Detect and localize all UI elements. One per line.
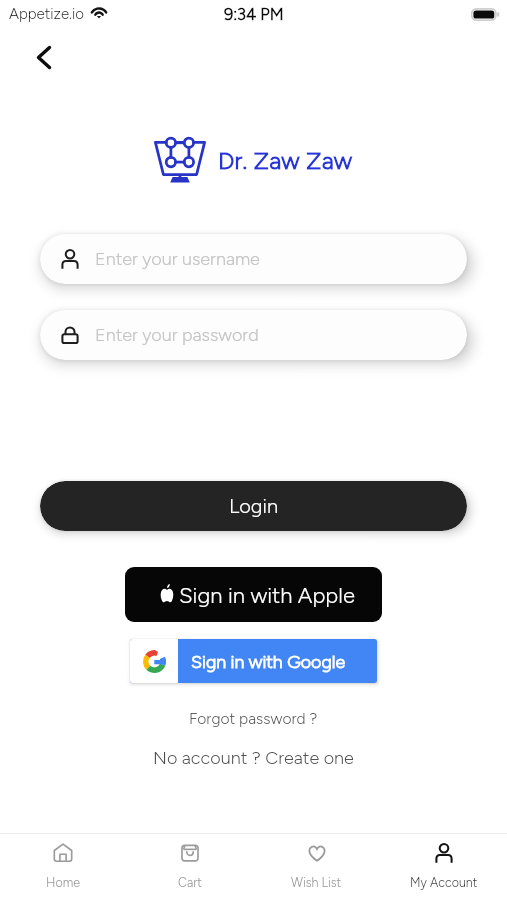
- button[interactable]: Login: [40, 481, 467, 531]
- staticText: 9:34 PM: [224, 4, 284, 24]
- button[interactable]: Enter your password: [40, 310, 467, 360]
- staticText: No account ? Create one: [153, 747, 354, 769]
- staticText: Forgot password ?: [189, 709, 318, 728]
- button[interactable]: No account ? Create one: [145, 744, 362, 772]
- staticText: Sign in with Google: [191, 651, 346, 672]
- staticText: Enter your username: [95, 248, 260, 270]
- button[interactable]: Sign in with Google: [130, 639, 377, 683]
- button[interactable]: Forgot password ?: [181, 706, 326, 731]
- staticText: Enter your password: [95, 324, 259, 346]
- button[interactable]: Wish List: [253, 839, 380, 896]
- staticText: Wish List: [291, 875, 342, 890]
- button[interactable]: Home: [0, 839, 126, 896]
- staticText: Home: [46, 875, 80, 890]
- button[interactable]: Sign in with Apple: [125, 567, 382, 622]
- staticText: Sign in with Apple: [179, 582, 355, 608]
- button[interactable]: Back: [26, 39, 62, 75]
- staticText: Login: [229, 494, 278, 518]
- staticText: Appetize.io: [9, 5, 84, 23]
- button[interactable]: Enter your username: [40, 234, 467, 284]
- button[interactable]: Cart: [126, 839, 253, 896]
- staticText: My Account: [410, 875, 478, 890]
- staticText: Dr. Zaw Zaw: [218, 146, 353, 175]
- button[interactable]: My Account: [380, 839, 507, 896]
- staticText: Cart: [178, 875, 202, 890]
